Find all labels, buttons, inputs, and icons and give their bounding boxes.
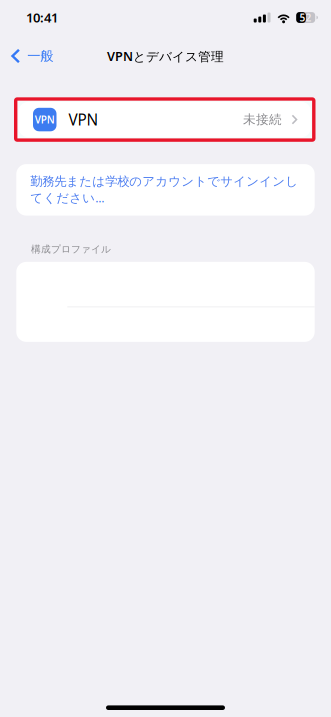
staticText: 5 [300,11,306,24]
button[interactable]: 勤務先または学校のアカウントでサインインしてください... [16,164,315,216]
staticText: 2 [306,11,312,24]
staticText: VPN [35,113,55,126]
staticText: VPNとデバイス管理 [107,47,224,65]
button[interactable]: 一般 [0,35,64,77]
staticText: 10:41 [26,9,58,26]
button[interactable]: VPN [18,102,311,137]
staticText: 構成プロファイル [31,243,111,255]
staticText: 未接続 [243,112,282,128]
staticText: 一般 [27,48,53,64]
staticText: VPN [68,109,98,130]
staticText: 勤務先または学校のアカウントでサインインしてください... [30,174,298,206]
